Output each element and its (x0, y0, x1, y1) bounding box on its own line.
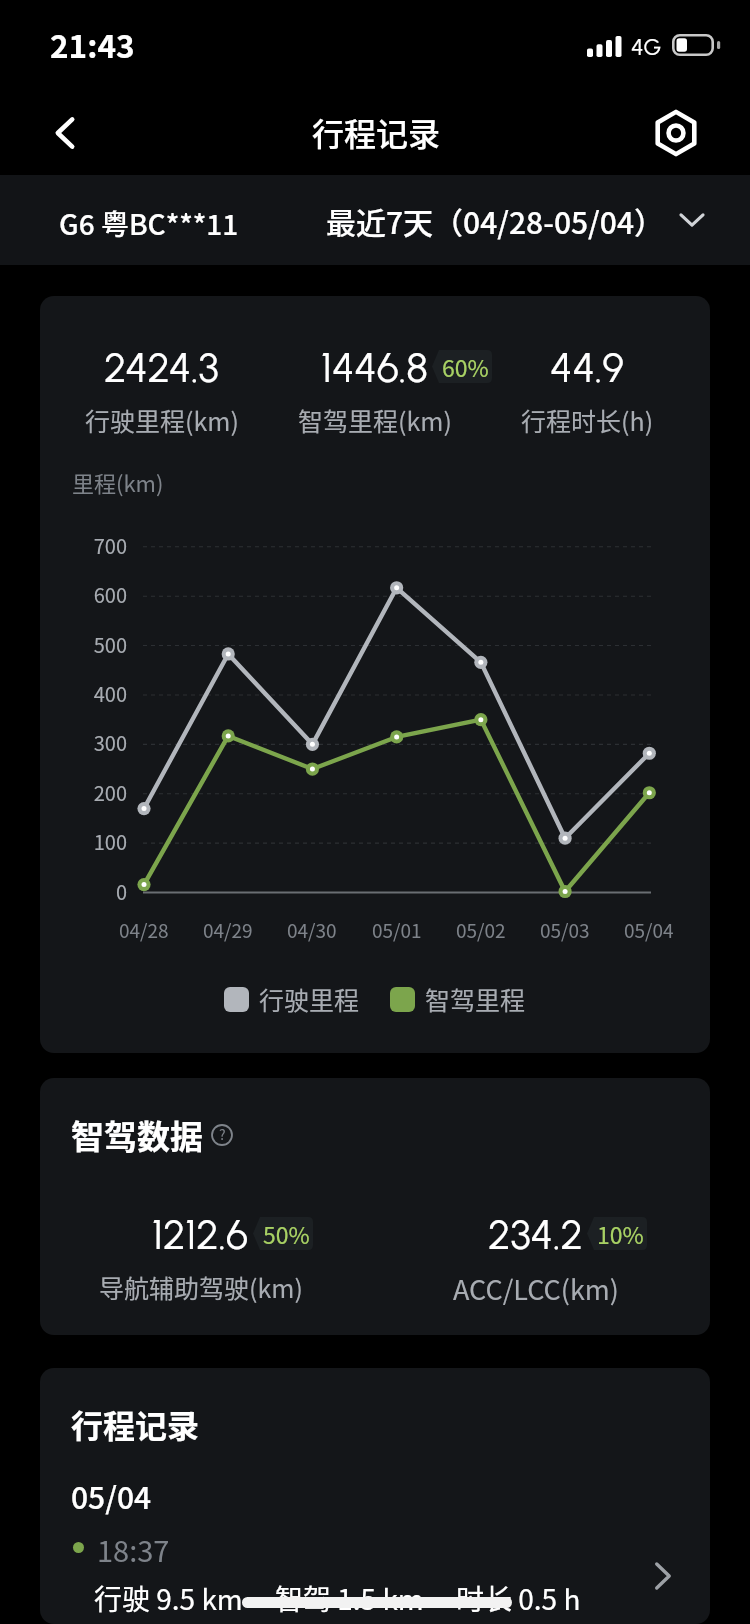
button[interactable]: 最近7天（04/28-05/04） (310, 175, 705, 265)
staticText: 05/04 (71, 1474, 152, 1517)
staticText: 行驶里程(km) (85, 402, 239, 438)
staticText: 智驾里程(km) (298, 402, 452, 438)
button[interactable]: Settings (645, 102, 707, 164)
staticText: 05/02 (456, 916, 506, 944)
staticText: 行程时长(h) (521, 402, 654, 438)
staticText: 21:43 (50, 21, 135, 67)
staticText: 400 (61, 679, 127, 708)
staticText: 700 (61, 531, 127, 560)
staticText: 智驾里程 (425, 981, 526, 1017)
staticText: 智驾 1.5 km (275, 1578, 424, 1619)
staticText: 04/30 (287, 916, 337, 944)
staticText: 44.9 (550, 343, 624, 391)
staticText: G6 粤BC***11 (59, 203, 239, 244)
staticText: 1446.8 (321, 343, 428, 391)
staticText: 0 (61, 877, 127, 906)
staticText: 05/03 (540, 916, 590, 944)
staticText: 100 (61, 827, 127, 856)
staticText: 50% (263, 1217, 310, 1250)
button[interactable]: Info (209, 1122, 235, 1148)
staticText: 里程(km) (72, 466, 164, 498)
staticText: 行程记录 (312, 109, 441, 155)
staticText: 05/01 (372, 916, 422, 944)
staticText: 4G (631, 33, 662, 61)
staticText: 300 (61, 728, 127, 757)
staticText: 04/29 (203, 916, 253, 944)
staticText: 行驶 9.5 km (94, 1578, 243, 1619)
button[interactable]: Back (34, 102, 96, 164)
staticText: 10% (597, 1217, 644, 1250)
button[interactable]: 18:37 (40, 1526, 710, 1624)
staticText: 200 (61, 778, 127, 807)
staticText: ? (219, 1124, 226, 1144)
staticText: 500 (61, 630, 127, 659)
staticText: 600 (61, 580, 127, 609)
staticText: 导航辅助驾驶(km) (99, 1269, 303, 1305)
staticText: 234.2 (488, 1210, 583, 1258)
staticText: 时长 0.5 h (456, 1578, 581, 1619)
staticText: ACC/LCC(km) (453, 1269, 619, 1308)
staticText: 05/04 (624, 916, 674, 944)
staticText: 04/28 (119, 916, 169, 944)
button[interactable]: G6 粤BC***11 (40, 175, 260, 265)
staticText: 行驶里程 (259, 981, 360, 1017)
staticText: 60% (442, 350, 489, 383)
staticText: 行程记录 (71, 1401, 200, 1447)
staticText: 18:37 (97, 1528, 170, 1570)
staticText: 最近7天（04/28-05/04） (326, 199, 665, 242)
staticText: 智驾数据 (71, 1111, 203, 1159)
staticText: 2424.3 (104, 343, 219, 391)
staticText: 1212.6 (152, 1210, 249, 1258)
